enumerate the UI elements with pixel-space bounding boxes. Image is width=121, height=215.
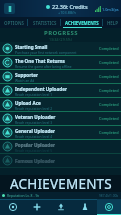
button[interactable]: STATISTICS <box>28 17 61 28</box>
button[interactable]: Network <box>0 199 25 215</box>
button[interactable]: Research <box>73 199 97 215</box>
staticText: 987.4k/1.00b <box>99 194 119 198</box>
button[interactable]: Starting Small <box>0 42 121 56</box>
staticText: 1.0m3/ps <box>102 7 119 12</box>
staticText: Reach reputation level 1 <box>15 92 53 96</box>
staticText: Popular Uploader <box>15 142 56 148</box>
staticText: Upload Ace <box>15 100 41 106</box>
button[interactable]: General Uploader <box>0 126 121 140</box>
staticText: Reach reputation level 3 <box>15 120 53 124</box>
button[interactable]: OPTIONS <box>0 17 28 28</box>
button[interactable]: Add component <box>25 199 49 215</box>
button[interactable]: Independent Uploader <box>0 84 121 98</box>
staticText: STATISTICS <box>33 20 57 26</box>
staticText: PROGRESS <box>44 29 78 37</box>
staticText: Veteran Uploader <box>15 114 56 120</box>
staticText: The One That Returns <box>15 58 65 64</box>
staticText: Purchase your first network component <box>15 50 77 54</box>
button[interactable]: Famous Uploader <box>0 154 121 168</box>
button[interactable]: Veteran Uploader <box>0 112 121 126</box>
staticText: Completed <box>99 46 119 51</box>
staticText: Resume the game after being offline <box>15 64 72 68</box>
staticText: Reputation Lv. 8 - 9x <box>7 193 40 198</box>
button[interactable]: Achievements <box>97 199 121 215</box>
staticText: ACHIEVEMENTS <box>10 175 112 192</box>
button[interactable]: Popular Uploader <box>0 140 121 154</box>
staticText: 22.36t Credits <box>52 3 88 10</box>
staticText: Completed <box>99 60 119 65</box>
staticText: Independent Uploader <box>15 86 67 92</box>
staticText: Completed <box>99 102 119 107</box>
button[interactable]: HELP <box>103 17 121 28</box>
staticText: Completed <box>99 116 119 121</box>
staticText: +103.88/h <box>58 10 76 15</box>
staticText: Reach reputation level 2 <box>15 106 53 110</box>
staticText: Famous Uploader <box>15 158 56 164</box>
staticText: Completed <box>99 74 119 79</box>
staticText: General Uploader <box>15 128 56 134</box>
button[interactable]: The One That Returns <box>0 56 121 70</box>
staticText: Reach reputation level 4 <box>15 134 53 138</box>
button[interactable]: Supporter <box>0 70 121 84</box>
button[interactable]: Upload Ace <box>0 98 121 112</box>
staticText: HELP <box>107 20 118 26</box>
button[interactable]: Upload <box>49 199 73 215</box>
staticText: Reach reputation level 5 <box>15 148 53 152</box>
staticText: Supporter <box>15 72 39 78</box>
staticText: OPTIONS <box>4 20 24 26</box>
staticText: ACHIEVEMENTS <box>65 20 99 26</box>
button[interactable]: Menu <box>4 3 15 14</box>
staticText: Completed <box>99 130 119 135</box>
staticText: 13/44 (29.5%) <box>49 37 72 42</box>
staticText: Completed <box>99 88 119 93</box>
button[interactable]: ACHIEVEMENTS <box>61 17 103 28</box>
staticText: Starting Small <box>15 44 48 50</box>
staticText: Watch an Ad <box>15 78 35 82</box>
